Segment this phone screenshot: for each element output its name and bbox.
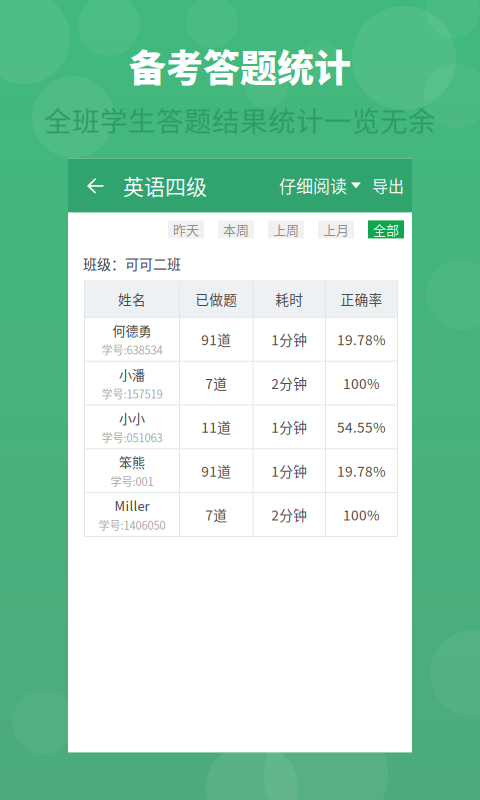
staticText: 学号:638534 — [101, 342, 162, 358]
staticText: 1分钟 — [271, 417, 307, 437]
staticText: 小小 — [119, 408, 145, 427]
staticText: 学号:051063 — [101, 429, 162, 445]
staticText: 全班学生答题结果统计一览无余 — [44, 100, 436, 139]
staticText: 19.78% — [337, 461, 386, 481]
button[interactable]: 仔细阅读 — [279, 158, 372, 212]
staticText: 2分钟 — [271, 505, 307, 524]
staticText: 备考答题统计 — [129, 39, 351, 93]
staticText: 1分钟 — [271, 329, 307, 349]
staticText: 昨天 — [173, 220, 199, 239]
staticText: 班级：可可二班 — [83, 253, 181, 274]
button[interactable]: 全部 — [368, 220, 404, 238]
staticText: 笨熊 — [119, 452, 145, 471]
staticText: 上周 — [273, 220, 299, 239]
staticText: 仔细阅读 — [279, 173, 347, 198]
button[interactable]: 返回 — [68, 158, 123, 212]
staticText: 7道 — [205, 505, 227, 524]
button[interactable]: 上月 — [318, 220, 354, 238]
staticText: 54.55% — [337, 417, 386, 437]
staticText: 100% — [343, 505, 380, 524]
staticText: 上月 — [323, 220, 349, 239]
staticText: 导出 — [372, 174, 404, 197]
staticText: 何德勇 — [112, 321, 151, 340]
button[interactable]: 导出 — [372, 158, 412, 212]
staticText: 姓名 — [118, 289, 146, 309]
staticText: Miller — [114, 496, 149, 515]
staticText: 19.78% — [337, 329, 386, 349]
staticText: 学号:001 — [110, 473, 153, 489]
staticText: 11道 — [201, 417, 231, 437]
staticText: 7道 — [205, 373, 227, 393]
staticText: 耗时 — [275, 289, 303, 309]
staticText: 91道 — [201, 329, 231, 349]
staticText: 已做题 — [195, 289, 237, 309]
staticText: 本周 — [223, 220, 249, 239]
staticText: 1分钟 — [271, 461, 307, 481]
staticText: 100% — [343, 373, 380, 393]
staticText: 91道 — [201, 461, 231, 481]
staticText: 2分钟 — [271, 373, 307, 393]
button[interactable]: 昨天 — [168, 220, 204, 238]
staticText: 小潘 — [119, 365, 145, 383]
staticText: 学号:1406050 — [98, 517, 165, 533]
staticText: 英语四级 — [123, 170, 207, 201]
staticText: 学号:157519 — [101, 385, 162, 402]
staticText: 全部 — [373, 220, 399, 239]
staticText: 正确率 — [340, 289, 382, 309]
button[interactable]: 本周 — [218, 220, 254, 238]
button[interactable]: 上周 — [268, 220, 304, 238]
